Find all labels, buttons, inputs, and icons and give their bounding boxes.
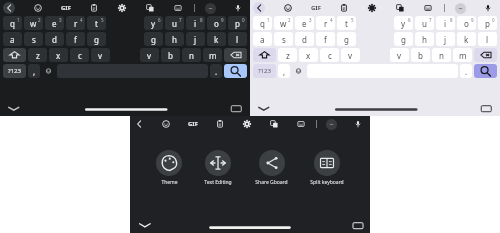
button[interactable]: Back — [133, 118, 145, 130]
button[interactable]: v — [91, 48, 110, 62]
button[interactable]: Clipboard — [338, 2, 350, 14]
button[interactable]: r — [66, 16, 85, 30]
button[interactable]: a — [253, 32, 272, 46]
button[interactable]: v — [341, 48, 360, 62]
button[interactable]: t — [337, 16, 356, 30]
button[interactable]: Voice input — [352, 118, 364, 130]
button[interactable]: ?123 — [3, 64, 26, 78]
button[interactable]: c — [70, 48, 89, 62]
button[interactable]: Search — [474, 64, 497, 78]
button[interactable]: x — [49, 48, 68, 62]
button[interactable]: Theme — [154, 150, 184, 186]
button[interactable]: v — [390, 48, 409, 62]
button[interactable]: z — [278, 48, 297, 62]
button[interactable]: More options — [205, 3, 216, 14]
button[interactable]: n — [182, 48, 201, 62]
button[interactable]: b — [411, 48, 430, 62]
button[interactable]: k — [457, 32, 476, 46]
button[interactable]: g — [394, 32, 413, 46]
button[interactable]: Clipboard — [214, 118, 226, 130]
button[interactable]: w — [274, 16, 293, 30]
button[interactable]: Backspace — [224, 48, 247, 62]
button[interactable]: Shift — [253, 48, 276, 62]
button[interactable]: Voice input — [232, 2, 244, 14]
button[interactable]: h — [165, 32, 184, 46]
button[interactable]: One-handed mode — [295, 118, 307, 130]
button[interactable]: . — [210, 64, 222, 78]
button[interactable]: Translate — [144, 2, 156, 14]
button[interactable]: e — [45, 16, 64, 30]
button[interactable]: Backspace — [474, 48, 497, 62]
button[interactable]: j — [186, 32, 205, 46]
button[interactable]: Back — [253, 2, 265, 14]
button[interactable]: z — [28, 48, 47, 62]
button[interactable]: g — [144, 32, 163, 46]
button[interactable]: f — [316, 32, 335, 46]
button[interactable]: Split keyboard — [308, 150, 346, 186]
button[interactable]: j — [436, 32, 455, 46]
button[interactable]: m — [453, 48, 472, 62]
button[interactable]: d — [45, 32, 64, 46]
button[interactable]: p — [478, 16, 497, 30]
button[interactable]: Shift — [3, 48, 26, 62]
button[interactable]: Emoji — [160, 118, 172, 130]
button[interactable]: Settings — [241, 118, 253, 130]
button[interactable]: , — [28, 64, 40, 78]
button[interactable]: , — [278, 64, 290, 78]
button[interactable]: Voice input — [482, 2, 494, 14]
button[interactable]: Translate — [268, 118, 280, 130]
button[interactable]: i — [186, 16, 205, 30]
button[interactable]: m — [203, 48, 222, 62]
button[interactable]: a — [3, 32, 22, 46]
button[interactable]: e — [295, 16, 314, 30]
button[interactable]: n — [432, 48, 451, 62]
button[interactable]: w — [24, 16, 43, 30]
button[interactable]: Emoji — [282, 2, 294, 14]
button[interactable]: s — [24, 32, 43, 46]
button[interactable]: t — [87, 16, 106, 30]
button[interactable]: Back — [3, 2, 15, 14]
button[interactable]: h — [415, 32, 434, 46]
button[interactable]: c — [320, 48, 339, 62]
button[interactable]: Settings — [366, 2, 378, 14]
button[interactable]: Emoji — [32, 2, 44, 14]
button[interactable]: u — [415, 16, 434, 30]
button[interactable]: Clipboard — [88, 2, 100, 14]
button[interactable]: l — [228, 32, 247, 46]
button[interactable]: y — [394, 16, 413, 30]
button[interactable]: ?123 — [253, 64, 276, 78]
button[interactable]: GIF — [310, 4, 322, 12]
button[interactable]: Emoji — [42, 64, 55, 78]
button[interactable]: x — [299, 48, 318, 62]
button[interactable]: o — [457, 16, 476, 30]
button[interactable]: One-handed mode — [422, 2, 434, 14]
button[interactable]: Search — [224, 64, 247, 78]
button[interactable]: i — [436, 16, 455, 30]
button[interactable]: . — [460, 64, 472, 78]
button[interactable]: r — [316, 16, 335, 30]
button[interactable]: GIF — [60, 4, 72, 12]
button[interactable]: Settings — [116, 2, 128, 14]
button[interactable]: v — [140, 48, 159, 62]
button[interactable]: GIF — [187, 120, 199, 128]
button[interactable]: d — [295, 32, 314, 46]
button[interactable]: Text Editing — [202, 150, 234, 186]
button[interactable]: q — [253, 16, 272, 30]
button[interactable]: g — [337, 32, 356, 46]
button[interactable]: b — [161, 48, 180, 62]
button[interactable]: y — [144, 16, 163, 30]
button[interactable]: k — [207, 32, 226, 46]
button[interactable]: One-handed mode — [172, 2, 184, 14]
button[interactable]: q — [3, 16, 22, 30]
button[interactable]: l — [478, 32, 497, 46]
button[interactable]: u — [165, 16, 184, 30]
button[interactable]: More options — [326, 119, 337, 130]
button[interactable]: More options — [455, 3, 466, 14]
button[interactable]: s — [274, 32, 293, 46]
button[interactable]: Share Gboard — [253, 150, 290, 186]
button[interactable]: Translate — [394, 2, 406, 14]
button[interactable]: Emoji — [292, 64, 305, 78]
button[interactable]: p — [228, 16, 247, 30]
